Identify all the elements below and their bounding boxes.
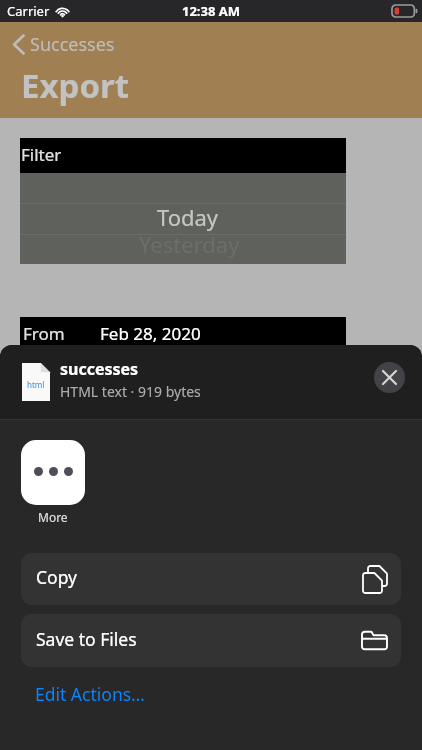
staticText: Carrier <box>7 2 50 20</box>
staticText: Copy <box>36 565 363 589</box>
staticText: Export <box>21 63 130 108</box>
staticText: Successes <box>30 32 115 57</box>
staticText: Edit Actions… <box>35 682 145 706</box>
staticText: From <box>23 322 65 345</box>
button[interactable]: Save to Files <box>21 614 401 667</box>
staticText: Save to Files <box>36 627 362 651</box>
button[interactable]: Edit Actions… <box>35 682 145 706</box>
button[interactable]: More <box>21 440 85 505</box>
staticText: 12:38 AM <box>182 2 241 20</box>
button[interactable]: Copy <box>21 553 401 605</box>
staticText: html <box>27 379 45 390</box>
staticText: Today <box>157 202 219 232</box>
staticText: More <box>38 509 68 525</box>
staticText: Feb 28, 2020 <box>100 322 201 345</box>
staticText: Filter <box>21 143 62 166</box>
staticText: successes <box>60 358 139 380</box>
button[interactable]: Close <box>374 362 405 393</box>
staticText: Yesterday <box>139 229 240 258</box>
staticText: HTML text · 919 bytes <box>60 382 201 401</box>
